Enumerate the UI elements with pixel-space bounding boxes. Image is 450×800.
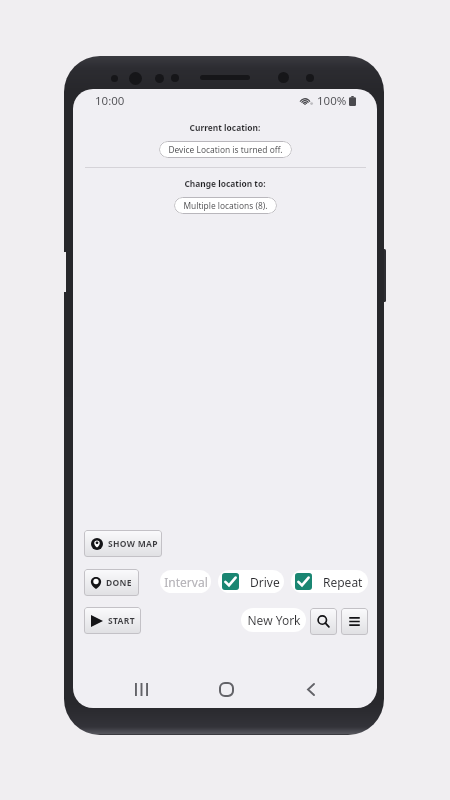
staticText: 100% (317, 93, 347, 109)
staticText: New York (247, 612, 301, 628)
staticText: Drive (250, 574, 280, 590)
staticText: Multiple locations (8). (183, 200, 268, 211)
button[interactable]: Menu (341, 608, 368, 635)
button[interactable]: Recents (125, 673, 157, 705)
button[interactable]: START (84, 607, 141, 634)
staticText: DONE (106, 577, 132, 589)
button[interactable]: New York (241, 608, 306, 632)
button[interactable]: Interval (160, 570, 211, 593)
button[interactable]: DONE (84, 569, 139, 596)
button[interactable]: SHOW MAP (84, 530, 162, 557)
button[interactable]: Drive (218, 570, 284, 593)
button[interactable]: Back (295, 673, 327, 705)
button[interactable]: Multiple locations (8). (174, 197, 277, 214)
staticText: Repeat (323, 574, 363, 590)
staticText: Interval (164, 574, 208, 590)
staticText: Change location to: (73, 178, 377, 189)
staticText: START (108, 615, 135, 627)
button[interactable]: Home (210, 673, 242, 705)
staticText: Device Location is turned off. (168, 144, 283, 155)
staticText: SHOW MAP (108, 538, 158, 550)
button[interactable]: Device Location is turned off. (159, 141, 292, 158)
staticText: Current location: (73, 122, 377, 133)
button[interactable]: Search (310, 608, 337, 635)
button[interactable]: Repeat (291, 570, 368, 593)
staticText: 10:00 (95, 93, 125, 109)
